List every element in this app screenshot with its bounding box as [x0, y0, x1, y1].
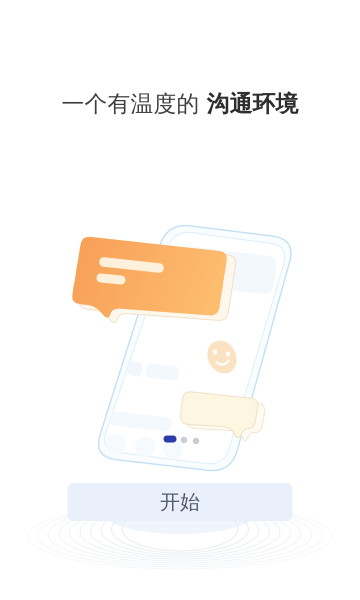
staticText: 开始 — [160, 490, 200, 514]
staticText: 沟通环境 — [206, 90, 298, 118]
staticText: 一个有温度的 — [61, 90, 206, 118]
button[interactable]: 开始 — [67, 483, 292, 521]
